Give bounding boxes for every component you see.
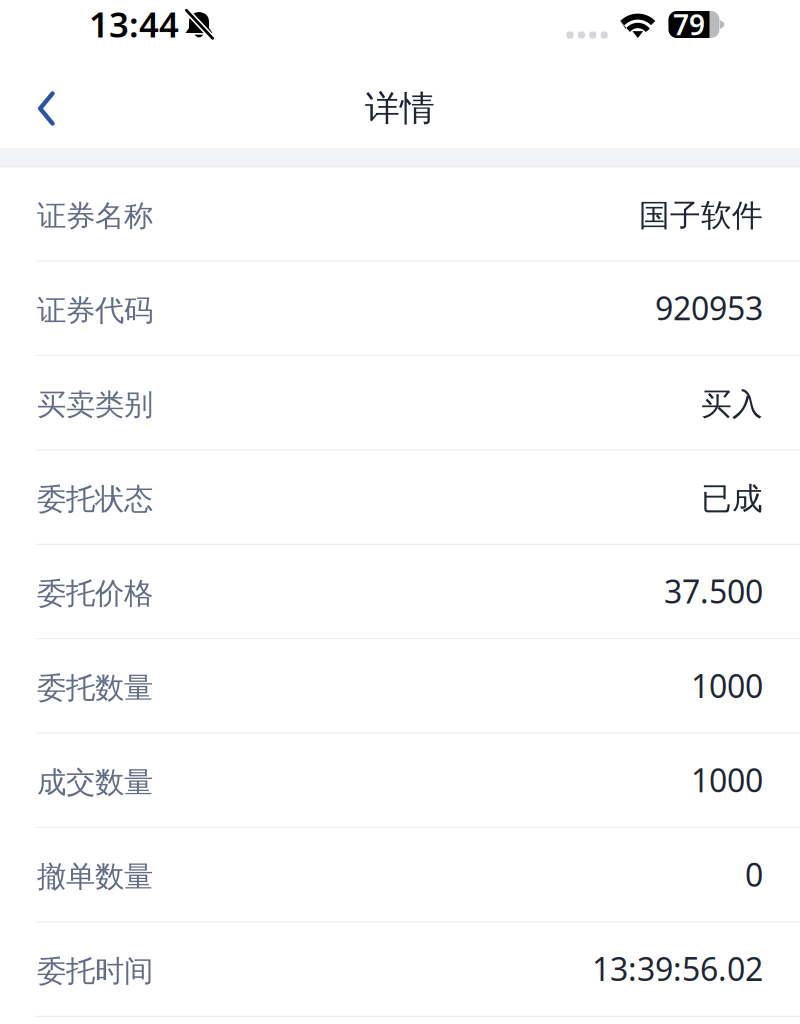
button[interactable]: 证券代码 <box>0 262 800 356</box>
staticText: 委托数量 <box>37 670 153 706</box>
staticText: 国子软件 <box>639 197 763 234</box>
staticText: 委托状态 <box>37 481 153 517</box>
button[interactable]: 委托状态 <box>0 451 800 545</box>
staticText: 委托时间 <box>37 953 153 989</box>
staticText: 1000 <box>691 759 763 801</box>
staticText: 0 <box>745 853 763 896</box>
staticText: 920953 <box>655 287 763 329</box>
staticText: 撤单数量 <box>37 859 153 895</box>
staticText: 买卖类别 <box>37 387 153 423</box>
button[interactable]: 买卖类别 <box>0 356 800 451</box>
button[interactable]: Back <box>0 67 79 145</box>
staticText: 成交数量 <box>37 764 153 800</box>
staticText: 证券代码 <box>37 292 153 328</box>
staticText: 13:39:56.02 <box>592 947 763 990</box>
staticText: 详情 <box>365 87 435 130</box>
staticText: 买入 <box>701 385 763 423</box>
button[interactable]: 委托价格 <box>0 545 800 639</box>
button[interactable]: 委托时间 <box>0 923 800 1017</box>
button[interactable]: 撤单数量 <box>0 828 800 923</box>
staticText: 委托价格 <box>37 576 153 612</box>
staticText: 13:44 <box>89 1 179 47</box>
button[interactable]: 成交数量 <box>0 734 800 828</box>
staticText: 已成 <box>701 480 763 518</box>
button[interactable]: 证券名称 <box>0 167 800 262</box>
staticText: 37.500 <box>664 570 763 612</box>
staticText: 79 <box>673 6 705 43</box>
button[interactable]: 委托数量 <box>0 639 800 734</box>
staticText: 证券名称 <box>37 198 153 234</box>
staticText: 1000 <box>691 664 763 707</box>
